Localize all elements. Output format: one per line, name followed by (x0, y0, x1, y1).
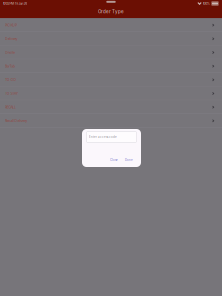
button[interactable]: PICKUP (0, 18, 222, 32)
staticText: 10:02 PM Fri Jun 26 (3, 2, 27, 5)
staticText: 100% (203, 2, 210, 5)
button[interactable]: Close (109, 158, 119, 163)
staticText: Order Type (98, 9, 124, 14)
staticText: Onsite (5, 50, 15, 55)
button[interactable]: Recall Delivery (0, 114, 222, 128)
staticText: RECALL (5, 105, 16, 109)
staticText: PICKUP (5, 23, 17, 27)
button[interactable]: Done (124, 158, 134, 163)
staticText: Close (110, 158, 118, 162)
staticText: Delivery (5, 37, 18, 41)
staticText: TO GO (5, 78, 16, 82)
staticText: BarTab (5, 64, 15, 68)
staticText: Recall Delivery (5, 119, 27, 123)
staticText: Enter access code (89, 135, 117, 139)
staticText: Done (125, 158, 133, 162)
staticText: TO STAY (5, 91, 18, 96)
